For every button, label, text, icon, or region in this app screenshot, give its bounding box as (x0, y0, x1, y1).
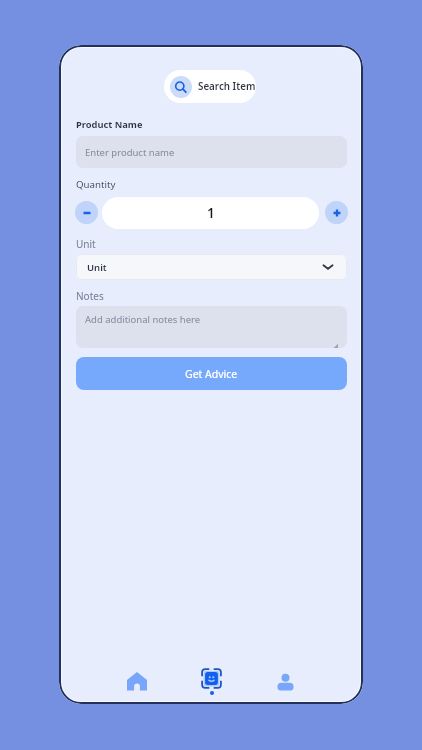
button[interactable]: Decrease (75, 201, 98, 224)
button[interactable]: Enter product name (76, 136, 347, 168)
staticText: Enter product name (85, 146, 175, 159)
staticText: Quantity (76, 178, 116, 191)
staticText: Get Advice (185, 367, 238, 381)
button[interactable]: Home (115, 659, 159, 703)
staticText: Search Item (198, 80, 256, 93)
staticText: Add additional notes here (85, 313, 201, 326)
button[interactable]: Profile (263, 659, 307, 703)
staticText: Product Name (76, 118, 143, 131)
button[interactable]: Add additional notes here (76, 306, 347, 348)
staticText: 1 (207, 204, 215, 222)
button[interactable]: Get Advice (76, 357, 347, 390)
staticText: Notes (76, 289, 104, 303)
staticText: Unit (87, 261, 107, 274)
button[interactable]: Search Item (164, 70, 256, 103)
button[interactable]: Unit (76, 254, 347, 280)
staticText: Unit (76, 237, 96, 251)
button[interactable]: 1 (102, 197, 319, 229)
button[interactable]: Scan (189, 659, 233, 703)
button[interactable]: Increase (325, 201, 348, 224)
